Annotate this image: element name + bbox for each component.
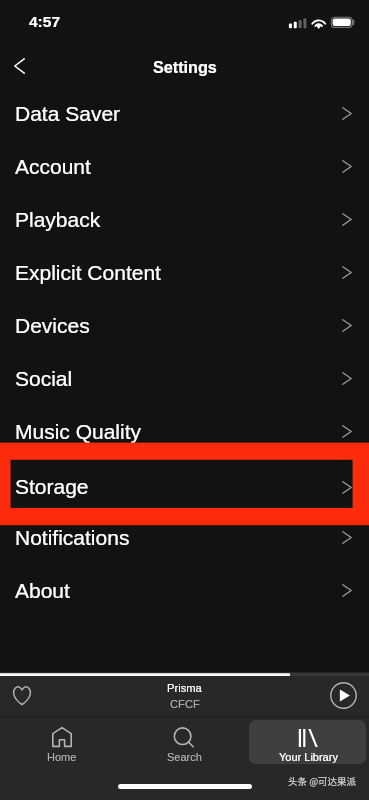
- staticText: About: [15, 579, 70, 602]
- staticText: Settings: [153, 58, 217, 76]
- staticText: Music Quality: [15, 420, 142, 443]
- staticText: 4:57: [29, 13, 61, 30]
- button[interactable]: Back: [0, 46, 40, 86]
- staticText: Your Library: [279, 751, 338, 763]
- staticText: Home: [47, 751, 77, 763]
- staticText: Account: [15, 155, 91, 178]
- button[interactable]: Search: [126, 720, 242, 764]
- staticText: Storage: [15, 473, 89, 496]
- button[interactable]: Social: [0, 351, 369, 404]
- button[interactable]: Playback: [0, 192, 369, 245]
- staticText: Prisma: [167, 682, 202, 695]
- staticText: Search: [167, 751, 202, 763]
- button[interactable]: Explicit Content: [0, 245, 369, 298]
- staticText: Social: [15, 367, 73, 390]
- button[interactable]: Account: [0, 139, 369, 192]
- staticText: Storage: [15, 475, 89, 498]
- button[interactable]: About: [0, 563, 369, 616]
- staticText: Notifications: [15, 526, 130, 549]
- button[interactable]: Music Quality: [0, 404, 369, 457]
- staticText: Explicit Content: [15, 261, 161, 284]
- staticText: Devices: [15, 314, 90, 337]
- button[interactable]: Play: [327, 679, 359, 711]
- button[interactable]: Notifications: [0, 510, 369, 563]
- button[interactable]: Like: [6, 679, 38, 711]
- staticText: Data Saver: [15, 102, 121, 125]
- staticText: Playback: [15, 208, 101, 231]
- staticText: CFCF: [170, 698, 200, 711]
- staticText: 头条 @可达果派: [288, 774, 357, 788]
- button[interactable]: Devices: [0, 298, 369, 351]
- button[interactable]: Your Library: [250, 720, 366, 764]
- button[interactable]: Home: [4, 720, 120, 764]
- button[interactable]: Storage: [0, 457, 369, 510]
- button[interactable]: Data Saver: [0, 86, 369, 139]
